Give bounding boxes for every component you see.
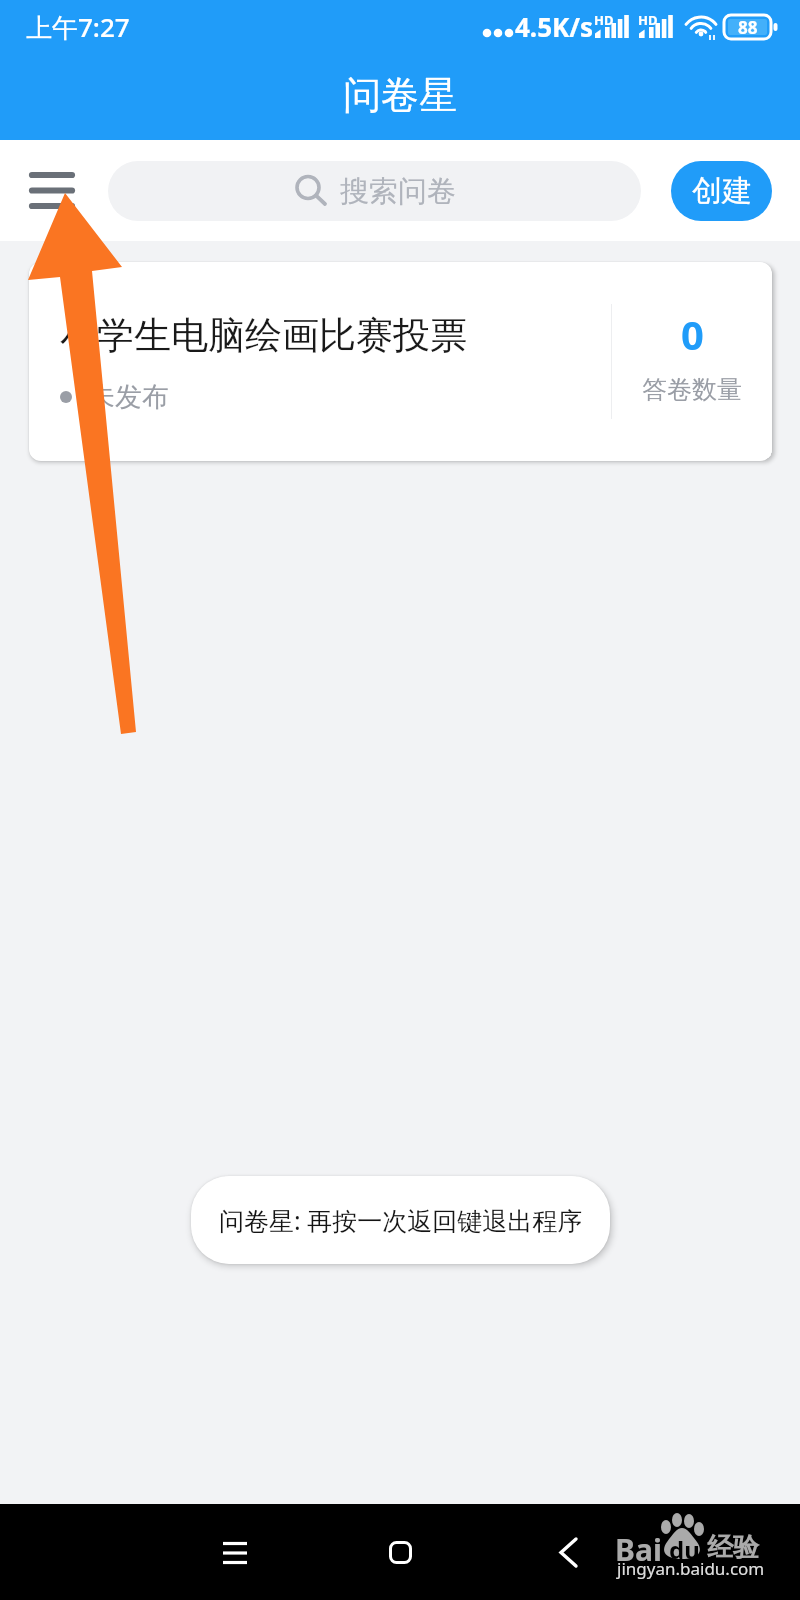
button[interactable]: Back: [538, 1504, 598, 1600]
button[interactable]: Recents: [205, 1504, 265, 1600]
staticText: 创建: [692, 172, 752, 210]
button[interactable]: 小学生电脑绘画比赛投票: [29, 262, 772, 461]
button[interactable]: 创建: [671, 161, 772, 221]
staticText: 答卷数量: [642, 374, 742, 405]
staticText: 问卷星: [343, 71, 457, 119]
staticText: du: [669, 1533, 700, 1566]
staticText: 未发布: [88, 380, 169, 414]
staticText: jingyan.baidu.com: [617, 1557, 765, 1580]
button[interactable]: Menu: [28, 167, 76, 215]
staticText: 88: [738, 16, 758, 39]
button[interactable]: 搜索问卷: [108, 161, 641, 221]
staticText: 问卷星: 再按一次返回键退出程序: [219, 1203, 583, 1237]
button[interactable]: Home: [370, 1504, 430, 1600]
staticText: HD: [594, 11, 614, 29]
staticText: Bai: [615, 1529, 662, 1570]
staticText: 经验: [707, 1531, 759, 1564]
staticText: HD: [638, 11, 658, 29]
staticText: 小学生电脑绘画比赛投票: [60, 312, 467, 359]
staticText: 4.5K/s: [515, 9, 594, 44]
staticText: 上午7:27: [26, 9, 130, 45]
staticText: 搜索问卷: [340, 173, 456, 210]
staticText: 0: [681, 307, 704, 361]
